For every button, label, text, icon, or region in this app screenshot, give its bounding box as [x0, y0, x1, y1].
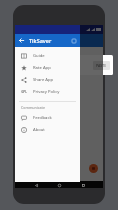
button[interactable]: Guide: [15, 50, 80, 62]
staticText: GPL: [21, 90, 27, 94]
button[interactable]: Feedback: [15, 112, 80, 124]
button[interactable]: PASTE: [93, 61, 110, 70]
button[interactable]: Back: [33, 182, 39, 188]
button[interactable]: Share App: [15, 74, 80, 86]
button[interactable]: About: [15, 124, 80, 136]
button[interactable]: More options: [70, 37, 78, 45]
button[interactable]: [15, 25, 103, 181]
staticText: TikSaver: [29, 37, 52, 44]
button[interactable]: GPL: [15, 86, 80, 98]
staticText: Communicate: [21, 105, 46, 110]
button[interactable]: Download: [89, 164, 98, 173]
staticText: Rate App: [33, 65, 51, 71]
staticText: Privacy Policy: [33, 89, 60, 95]
button[interactable]: Back: [17, 36, 26, 45]
button[interactable]: Recent apps: [80, 182, 86, 188]
staticText: Guide: [33, 53, 45, 59]
button[interactable]: Rate App: [15, 62, 80, 74]
staticText: PASTE: [96, 63, 107, 68]
staticText: Feedback: [33, 115, 52, 121]
staticText: About: [33, 127, 45, 133]
staticText: Share App: [33, 77, 54, 83]
button[interactable]: Home: [56, 182, 62, 188]
